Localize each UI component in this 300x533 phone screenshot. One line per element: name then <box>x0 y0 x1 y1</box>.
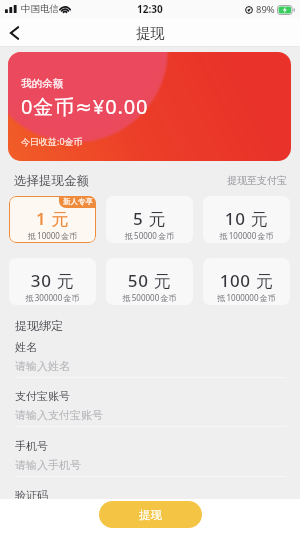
button[interactable]: 姓名 <box>15 340 286 388</box>
button[interactable]: 10 元 <box>203 196 290 243</box>
staticText: 5 元 <box>106 207 193 230</box>
button[interactable]: 1 元 <box>9 196 96 243</box>
button[interactable]: 手机号 <box>15 439 286 487</box>
staticText: 选择提现金额 <box>14 173 89 189</box>
button[interactable]: 5 元 <box>106 196 193 243</box>
staticText: 新人专享 <box>63 197 93 206</box>
staticText: 手机号 <box>15 439 48 453</box>
staticText: 10 元 <box>203 207 290 230</box>
staticText: 请输入支付宝账号 <box>15 408 103 422</box>
staticText: 1 元 <box>9 207 96 230</box>
staticText: 请输入姓名 <box>15 359 70 373</box>
staticText: 姓名 <box>15 340 37 354</box>
staticText: 支付宝账号 <box>15 389 70 403</box>
button[interactable]: Back <box>0 18 36 47</box>
staticText: 抵 300000 金币 <box>9 292 96 303</box>
staticText: 89% <box>256 3 275 16</box>
staticText: 100 元 <box>203 269 290 292</box>
staticText: 验证码 <box>15 488 48 502</box>
button[interactable]: 提现至支付宝 <box>225 172 289 189</box>
button[interactable]: 30 元 <box>9 258 96 305</box>
button[interactable]: 提现 <box>99 501 202 528</box>
button[interactable]: 我的余额 <box>8 52 291 161</box>
staticText: 提现至支付宝 <box>227 174 287 187</box>
staticText: 50 元 <box>106 269 193 292</box>
staticText: 30 元 <box>9 269 96 292</box>
staticText: 今日收益:0金币 <box>21 135 83 147</box>
staticText: 抵 500000 金币 <box>106 292 193 303</box>
staticText: 抵 10000 金币 <box>9 230 96 241</box>
staticText: 0金币≈¥0.00 <box>21 93 149 120</box>
button[interactable]: 100 元 <box>203 258 290 305</box>
staticText: 请输入手机号 <box>15 458 81 472</box>
staticText: 抵 50000 金币 <box>106 230 193 241</box>
staticText: 我的余额 <box>21 77 63 90</box>
staticText: 抵 100000 金币 <box>203 230 290 241</box>
staticText: 12:30 <box>137 2 163 16</box>
staticText: 提现绑定 <box>15 318 63 333</box>
staticText: 中国电信 <box>21 3 59 15</box>
staticText: 抵 1000000 金币 <box>203 292 290 303</box>
button[interactable]: 50 元 <box>106 258 193 305</box>
staticText: 提现 <box>136 24 165 42</box>
button[interactable]: 支付宝账号 <box>15 389 286 437</box>
staticText: 提现 <box>139 508 162 522</box>
